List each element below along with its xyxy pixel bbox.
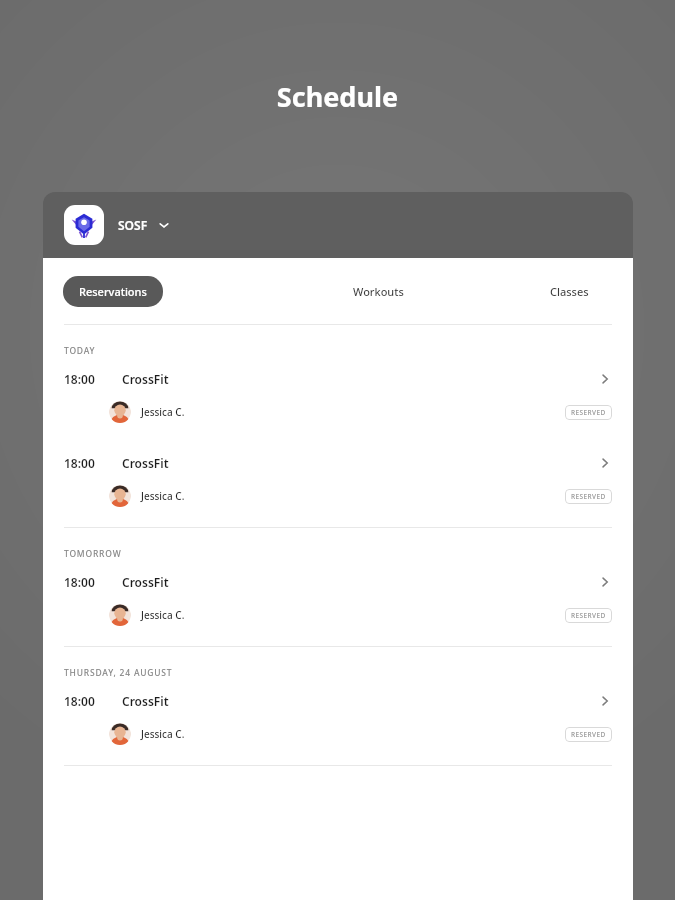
staticText: RESERVED	[571, 408, 606, 417]
button[interactable]: SOSF gym logo	[64, 205, 104, 245]
staticText: 18:00	[64, 574, 95, 590]
staticText: Jessica C.	[141, 489, 185, 503]
button[interactable]: 18:00	[43, 566, 633, 598]
button[interactable]: 18:00	[43, 447, 633, 479]
staticText: 18:00	[64, 371, 95, 387]
button[interactable]: Workouts	[343, 276, 414, 307]
button[interactable]: Classes	[540, 276, 599, 307]
staticText: 18:00	[64, 693, 95, 709]
staticText: Reservations	[79, 284, 147, 299]
staticText: Schedule	[0, 78, 675, 115]
staticText: CrossFit	[122, 693, 169, 709]
button[interactable]: 18:00	[43, 363, 633, 395]
staticText: Workouts	[353, 284, 404, 299]
staticText: CrossFit	[122, 574, 169, 590]
staticText: Jessica C.	[141, 405, 185, 419]
button[interactable]: Jessica C.	[43, 479, 633, 513]
staticText: Jessica C.	[141, 608, 185, 622]
staticText: SOSF	[118, 217, 148, 233]
button[interactable]: Jessica C.	[43, 598, 633, 632]
staticText: RESERVED	[571, 730, 606, 739]
staticText: RESERVED	[571, 492, 606, 501]
staticText: 18:00	[64, 455, 95, 471]
button[interactable]: SOSF	[118, 217, 170, 233]
staticText: CrossFit	[122, 455, 169, 471]
staticText: CrossFit	[122, 371, 169, 387]
staticText: RESERVED	[571, 611, 606, 620]
button[interactable]: Jessica C.	[43, 395, 633, 429]
button[interactable]: 18:00	[43, 685, 633, 717]
button[interactable]: Reservations	[63, 276, 163, 307]
staticText: TODAY	[64, 345, 96, 357]
staticText: THURSDAY, 24 AUGUST	[64, 667, 173, 679]
staticText: TOMORROW	[64, 548, 122, 560]
staticText: Jessica C.	[141, 727, 185, 741]
staticText: Classes	[550, 284, 589, 299]
button[interactable]: Jessica C.	[43, 717, 633, 751]
